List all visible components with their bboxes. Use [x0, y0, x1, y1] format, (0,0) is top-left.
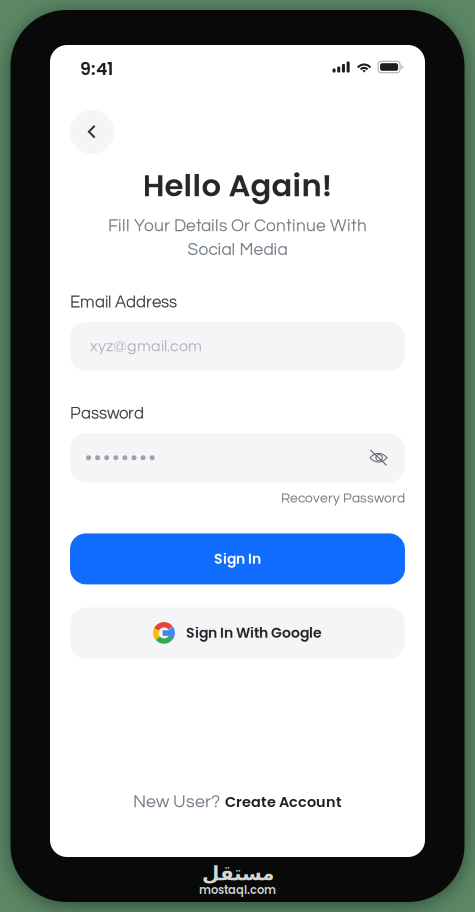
button[interactable]: Sign In: [70, 533, 405, 584]
button[interactable]: Recovery Password: [281, 491, 405, 505]
staticText: Password: [70, 405, 144, 422]
button[interactable]: Sign In With Google: [70, 607, 405, 658]
staticText: xyz@gmail.com: [90, 338, 202, 355]
staticText: Social Media: [187, 241, 287, 259]
button[interactable]: New User?: [133, 792, 342, 812]
staticText: Email Address: [70, 294, 177, 311]
staticText: Create Account: [225, 792, 342, 812]
staticText: Recovery Password: [281, 491, 405, 505]
staticText: Hello Again!: [142, 164, 332, 207]
staticText: 9:41: [80, 57, 113, 81]
button[interactable]: Back: [70, 110, 114, 154]
staticText: New User?: [133, 793, 220, 811]
staticText: Fill Your Details Or Continue With: [108, 217, 367, 235]
staticText: Sign In: [214, 549, 261, 569]
button[interactable]: Show password: [369, 449, 388, 466]
staticText: مستقل: [201, 862, 273, 885]
staticText: mostaql.com: [199, 882, 276, 898]
staticText: Sign In With Google: [186, 623, 322, 643]
